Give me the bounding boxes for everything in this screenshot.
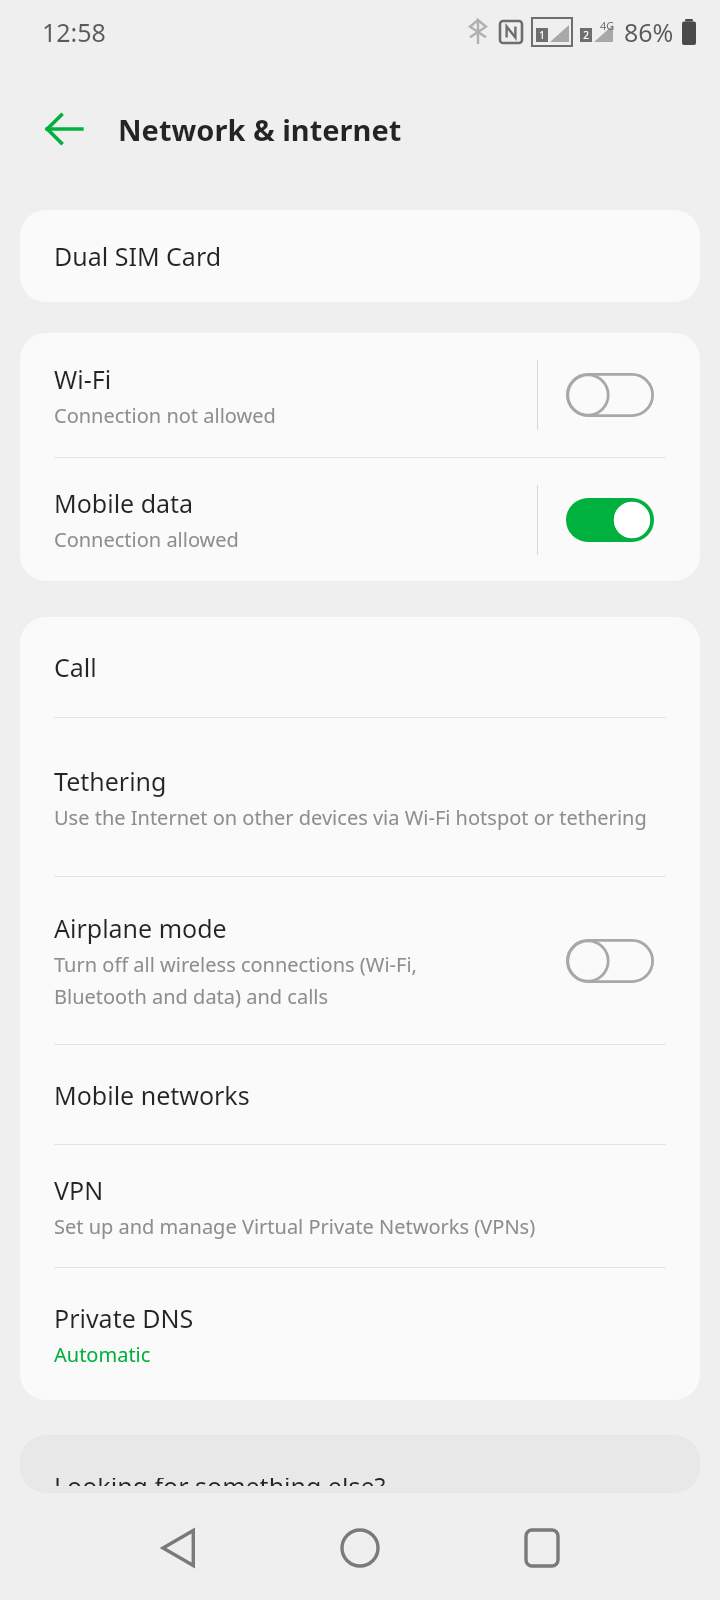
staticText: VPN [54,1173,104,1207]
staticText: 2 [583,28,589,42]
staticText: Network & internet [118,110,402,149]
staticText: 86% [624,15,674,49]
staticText: Airplane mode [54,911,227,945]
staticText: 12:58 [42,15,106,49]
button[interactable]: VPN [20,1145,700,1267]
button[interactable]: Back [140,1510,216,1586]
button[interactable]: Mobile networks [20,1045,700,1144]
staticText: Call [54,650,97,684]
staticText: Mobile data [54,486,194,520]
button[interactable]: Wi-Fi [20,333,700,457]
button[interactable]: Dual SIM Card [20,210,700,302]
button[interactable]: Home [322,1510,398,1586]
button[interactable]: Tethering [20,718,700,876]
staticText: Dual SIM Card [54,239,222,273]
staticText: Tethering [54,764,167,798]
staticText: Use the Internet on other devices via Wi… [54,804,647,831]
staticText: 4G [600,18,615,33]
button[interactable]: Mobile data on [566,498,654,542]
button[interactable]: Private DNS [20,1268,700,1400]
button[interactable]: Back [30,95,98,163]
button[interactable]: Recent apps [504,1510,580,1586]
button[interactable]: Mobile data [20,458,700,581]
staticText: Private DNS [54,1301,194,1335]
staticText: Set up and manage Virtual Private Networ… [54,1213,536,1240]
staticText: Connection not allowed [54,402,276,429]
staticText: Looking for something else? [54,1478,386,1486]
staticText: Turn off all wireless connections (Wi-Fi… [54,951,480,1010]
button[interactable]: Call [20,617,700,717]
button[interactable]: Airplane mode [20,877,700,1044]
button[interactable]: Airplane mode off [566,939,654,983]
button[interactable]: Wi-Fi off [566,373,654,417]
staticText: Connection allowed [54,526,239,553]
staticText: Wi-Fi [54,362,112,396]
staticText: Mobile networks [54,1078,250,1112]
button[interactable] [20,1435,700,1493]
staticText: 1 [539,28,545,42]
staticText: Automatic [54,1341,151,1368]
